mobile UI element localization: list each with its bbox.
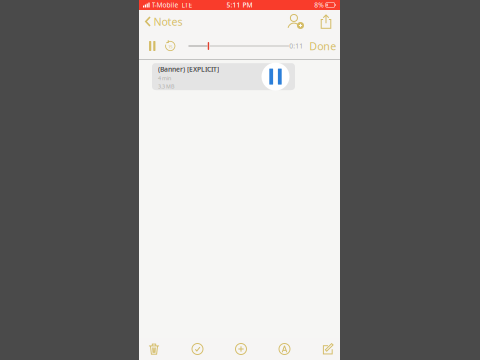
staticText: 4 min [158,75,171,82]
button[interactable]: Add attachment [225,338,257,360]
staticText: T-Mobile [152,1,179,9]
staticText: (Banner) [EXPLICIT] [158,65,219,74]
button[interactable]: Notes [139,10,188,32]
button[interactable]: Delete note [138,338,170,360]
button[interactable]: Markup [268,338,300,360]
button[interactable]: Checklist [181,338,213,360]
button[interactable]: Done [303,33,340,59]
button[interactable]: Share [314,10,338,33]
staticText: 15 [168,44,172,49]
staticText: 8% [314,1,324,9]
button[interactable]: New note [312,338,344,360]
button[interactable]: Pause [142,33,162,59]
button[interactable]: Pause audio attachment [260,62,290,92]
staticText: LTE [182,1,193,9]
button[interactable]: Add People [283,10,309,33]
button[interactable]: Skip back 15 seconds [160,33,180,59]
staticText: Notes [153,14,182,29]
staticText: 0:11 [289,42,303,50]
staticText: Done [309,39,336,53]
staticText: 3.3 MB [158,83,174,90]
staticText: 5:11 PM [226,1,252,9]
